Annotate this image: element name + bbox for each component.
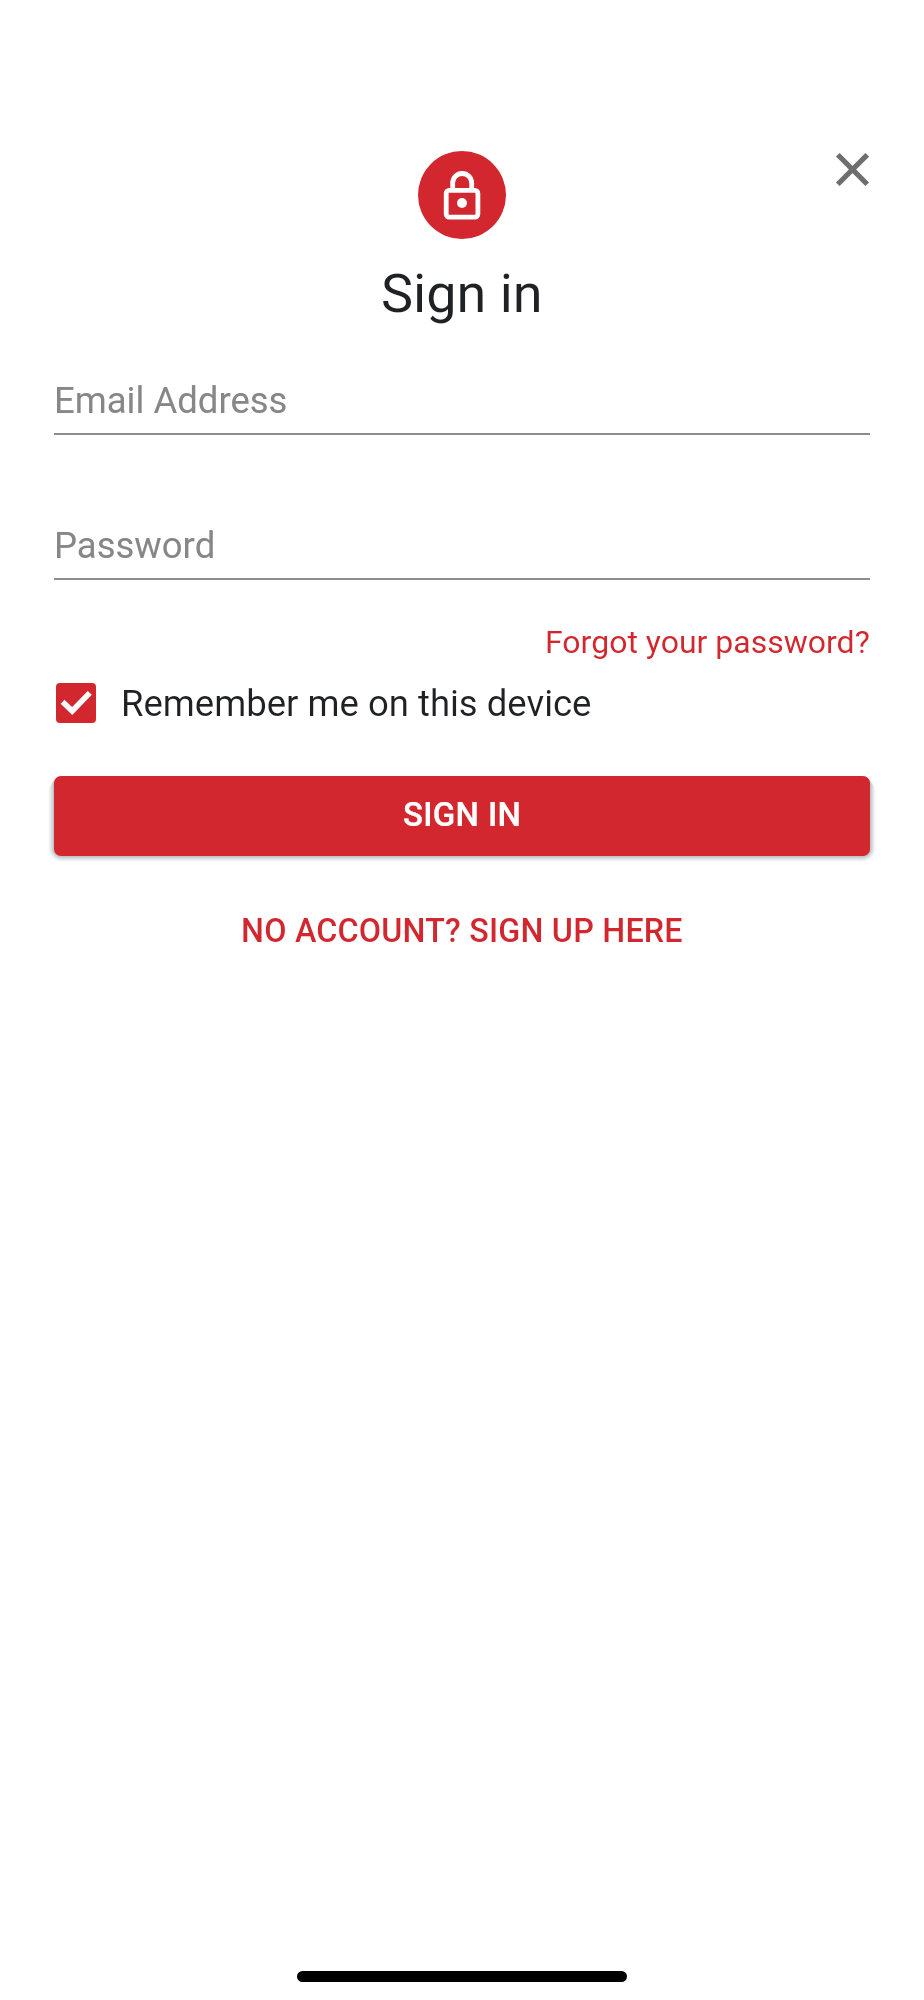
staticText: Remember me on this device bbox=[121, 682, 592, 725]
staticText: NO ACCOUNT? SIGN UP HERE bbox=[241, 912, 683, 950]
staticText: Email Address bbox=[54, 379, 288, 422]
staticText: Password bbox=[54, 524, 216, 567]
button[interactable]: NO ACCOUNT? SIGN UP HERE bbox=[221, 898, 703, 964]
staticText: SIGN IN bbox=[403, 795, 522, 834]
button[interactable]: Close bbox=[808, 125, 896, 213]
button[interactable]: SIGN IN bbox=[54, 776, 870, 856]
button[interactable]: Remember me on this device bbox=[54, 678, 592, 728]
staticText: Forgot your password? bbox=[545, 623, 870, 661]
staticText: Sign in bbox=[381, 262, 543, 325]
button[interactable]: Forgot your password? bbox=[545, 623, 870, 661]
button[interactable]: Password bbox=[54, 524, 870, 614]
button[interactable]: Email Address bbox=[54, 379, 870, 469]
